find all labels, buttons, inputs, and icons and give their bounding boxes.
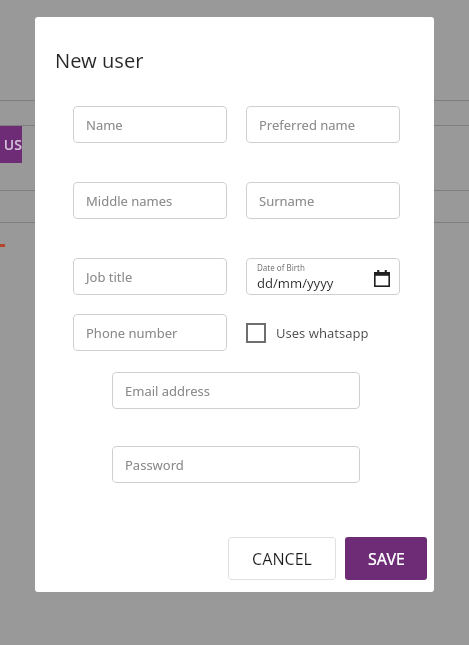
button[interactable]: Date of Birth	[246, 258, 400, 295]
button[interactable]: Job title	[73, 258, 227, 295]
button[interactable]: Surname	[246, 182, 400, 219]
staticText: SAVE	[368, 548, 405, 570]
staticText: New user	[55, 47, 144, 74]
button[interactable]: Uses whatsapp	[246, 314, 369, 351]
button[interactable]: W US	[0, 126, 22, 163]
staticText: Name	[86, 116, 123, 134]
staticText: W US	[0, 135, 22, 154]
staticText: Preferred name	[259, 116, 356, 134]
staticText: Date of Birth	[257, 262, 305, 273]
button[interactable]: Password	[112, 446, 360, 483]
button[interactable]: Preferred name	[246, 106, 400, 143]
button[interactable]: Name	[73, 106, 227, 143]
staticText: Job title	[86, 268, 133, 286]
button[interactable]: Phone number	[73, 314, 227, 351]
staticText: Password	[125, 456, 184, 474]
staticText: Phone number	[86, 324, 178, 342]
other: Open date picker	[374, 270, 390, 287]
staticText: Surname	[259, 192, 315, 210]
staticText: dd/mm/yyyy	[257, 274, 334, 292]
button[interactable]: Middle names	[73, 182, 227, 219]
staticText: Email address	[125, 382, 210, 400]
button[interactable]: Email address	[112, 372, 360, 409]
staticText: Uses whatsapp	[276, 324, 369, 342]
button[interactable]: CANCEL	[228, 537, 336, 580]
button[interactable]: SAVE	[345, 537, 427, 580]
staticText: Middle names	[86, 192, 173, 210]
staticText: CANCEL	[252, 548, 312, 570]
